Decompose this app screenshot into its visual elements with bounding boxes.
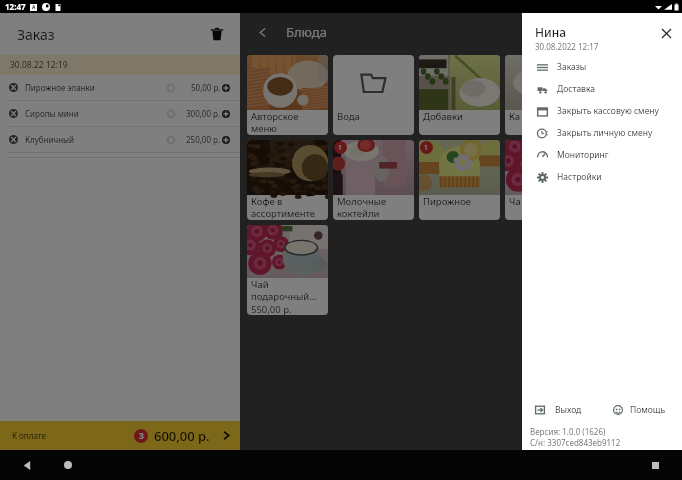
button[interactable]: Доставка xyxy=(522,78,682,100)
staticText: Ча xyxy=(509,195,521,208)
staticText: Молочные коктейли xyxy=(337,195,387,220)
staticText: Авторское меню xyxy=(251,110,299,135)
other: Decrease quantity xyxy=(167,84,175,92)
staticText: 600,00 р. xyxy=(154,427,210,445)
button[interactable]: Закрыть кассовую смену xyxy=(522,100,682,122)
staticText: Закрыть кассовую смену xyxy=(557,105,659,117)
button[interactable]: Delete order xyxy=(206,23,228,45)
button[interactable]: Ча xyxy=(505,140,586,220)
other: Increase quantity xyxy=(222,110,230,118)
other: Remove item xyxy=(9,135,18,144)
button[interactable]: Remove item xyxy=(0,127,240,152)
staticText: С/н: 3307ced843eb9112 xyxy=(530,437,621,448)
staticText: Сиропы мини xyxy=(25,108,79,119)
button[interactable]: Remove item xyxy=(0,75,240,100)
staticText: 1 xyxy=(424,143,429,153)
button[interactable]: Пирожное xyxy=(419,140,500,220)
staticText: Чай подарочный… xyxy=(251,278,317,303)
button[interactable]: Помощь xyxy=(613,404,666,416)
other: Remove item xyxy=(9,83,18,92)
other: Increase quantity xyxy=(222,136,230,144)
button[interactable]: Recent apps xyxy=(645,455,665,475)
staticText: Мониторинг xyxy=(557,149,609,161)
button[interactable]: Авторское меню xyxy=(247,55,328,135)
button[interactable]: Вода xyxy=(333,55,414,135)
button[interactable]: Заказы xyxy=(522,56,682,78)
staticText: К оплате xyxy=(12,430,46,441)
staticText: Помощь xyxy=(630,404,666,416)
button[interactable]: Добавки xyxy=(419,55,500,135)
staticText: Кофе в ассортименте xyxy=(251,195,316,220)
staticText: Пирожное xyxy=(423,195,472,208)
button[interactable]: Настройки xyxy=(522,166,682,188)
staticText: 250,00 р. xyxy=(186,134,221,145)
staticText: Выход xyxy=(555,404,582,416)
staticText: Доставка xyxy=(557,83,595,95)
staticText: 30.08.22 12:19 xyxy=(10,59,68,71)
staticText: Вода xyxy=(337,110,360,123)
button[interactable]: Молочные коктейли xyxy=(333,140,414,220)
button[interactable]: К оплате xyxy=(0,421,240,450)
staticText: Версия: 1.0.0 (1626) xyxy=(530,426,606,437)
button[interactable]: Remove item xyxy=(0,101,240,126)
staticText: 50,00 р. xyxy=(191,82,221,93)
staticText: 1 xyxy=(338,143,343,153)
other: Remove item xyxy=(9,109,18,118)
staticText: Настройки xyxy=(557,171,602,183)
other: Decrease quantity xyxy=(167,136,175,144)
staticText: Ка xyxy=(509,110,521,123)
button[interactable]: Ка xyxy=(505,55,586,135)
button[interactable]: Закрыть личную смену xyxy=(522,122,682,144)
staticText: Заказ xyxy=(17,25,55,44)
staticText: A xyxy=(32,4,36,11)
staticText: Клубничный xyxy=(25,134,75,145)
staticText: Пирожное эланки xyxy=(25,82,95,93)
staticText: Закрыть личную смену xyxy=(557,127,653,139)
button[interactable]: Выход xyxy=(535,404,582,416)
button[interactable]: Чай подарочный… xyxy=(247,225,328,315)
staticText: 30.08.2022 12:17 xyxy=(535,41,599,52)
staticText: 300,00 р. xyxy=(186,108,221,119)
button[interactable]: Back xyxy=(17,455,37,475)
staticText: 12:47 xyxy=(5,1,26,12)
button[interactable]: Close menu xyxy=(657,24,675,42)
staticText: 550,00 р. xyxy=(251,303,292,315)
button[interactable]: Мониторинг xyxy=(522,144,682,166)
staticText: Блюда xyxy=(286,23,327,41)
staticText: Нина xyxy=(535,24,566,40)
staticText: Заказы xyxy=(557,61,587,73)
other: Decrease quantity xyxy=(167,110,175,118)
staticText: Добавки xyxy=(423,110,463,123)
button[interactable]: Back xyxy=(252,22,272,42)
button[interactable]: Home xyxy=(58,455,78,475)
staticText: 3 xyxy=(139,430,144,442)
button[interactable]: Кофе в ассортименте xyxy=(247,140,328,220)
other: Increase quantity xyxy=(222,84,230,92)
